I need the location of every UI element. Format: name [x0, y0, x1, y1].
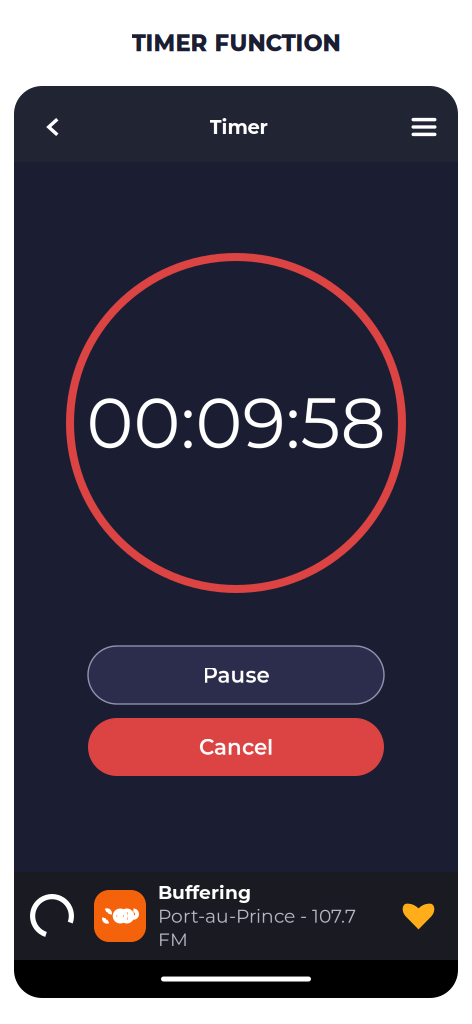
staticText: Port-au-Prince - 107.7 [158, 905, 356, 927]
button[interactable]: Cancel [88, 718, 384, 776]
button[interactable]: Back [33, 96, 73, 158]
staticText: TIMER FUNCTION [131, 29, 340, 57]
button[interactable]: Menu [404, 96, 444, 158]
button[interactable]: Loading [30, 885, 74, 947]
button[interactable]: Favourite [402, 885, 435, 947]
button[interactable]: Pause [88, 646, 384, 704]
staticText: Pause [202, 662, 269, 688]
staticText: 00:09:58 [86, 380, 385, 466]
staticText: Timer [209, 115, 267, 139]
staticText: Cancel [199, 734, 273, 760]
staticText: Buffering [158, 881, 251, 904]
staticText: FM [158, 928, 188, 951]
